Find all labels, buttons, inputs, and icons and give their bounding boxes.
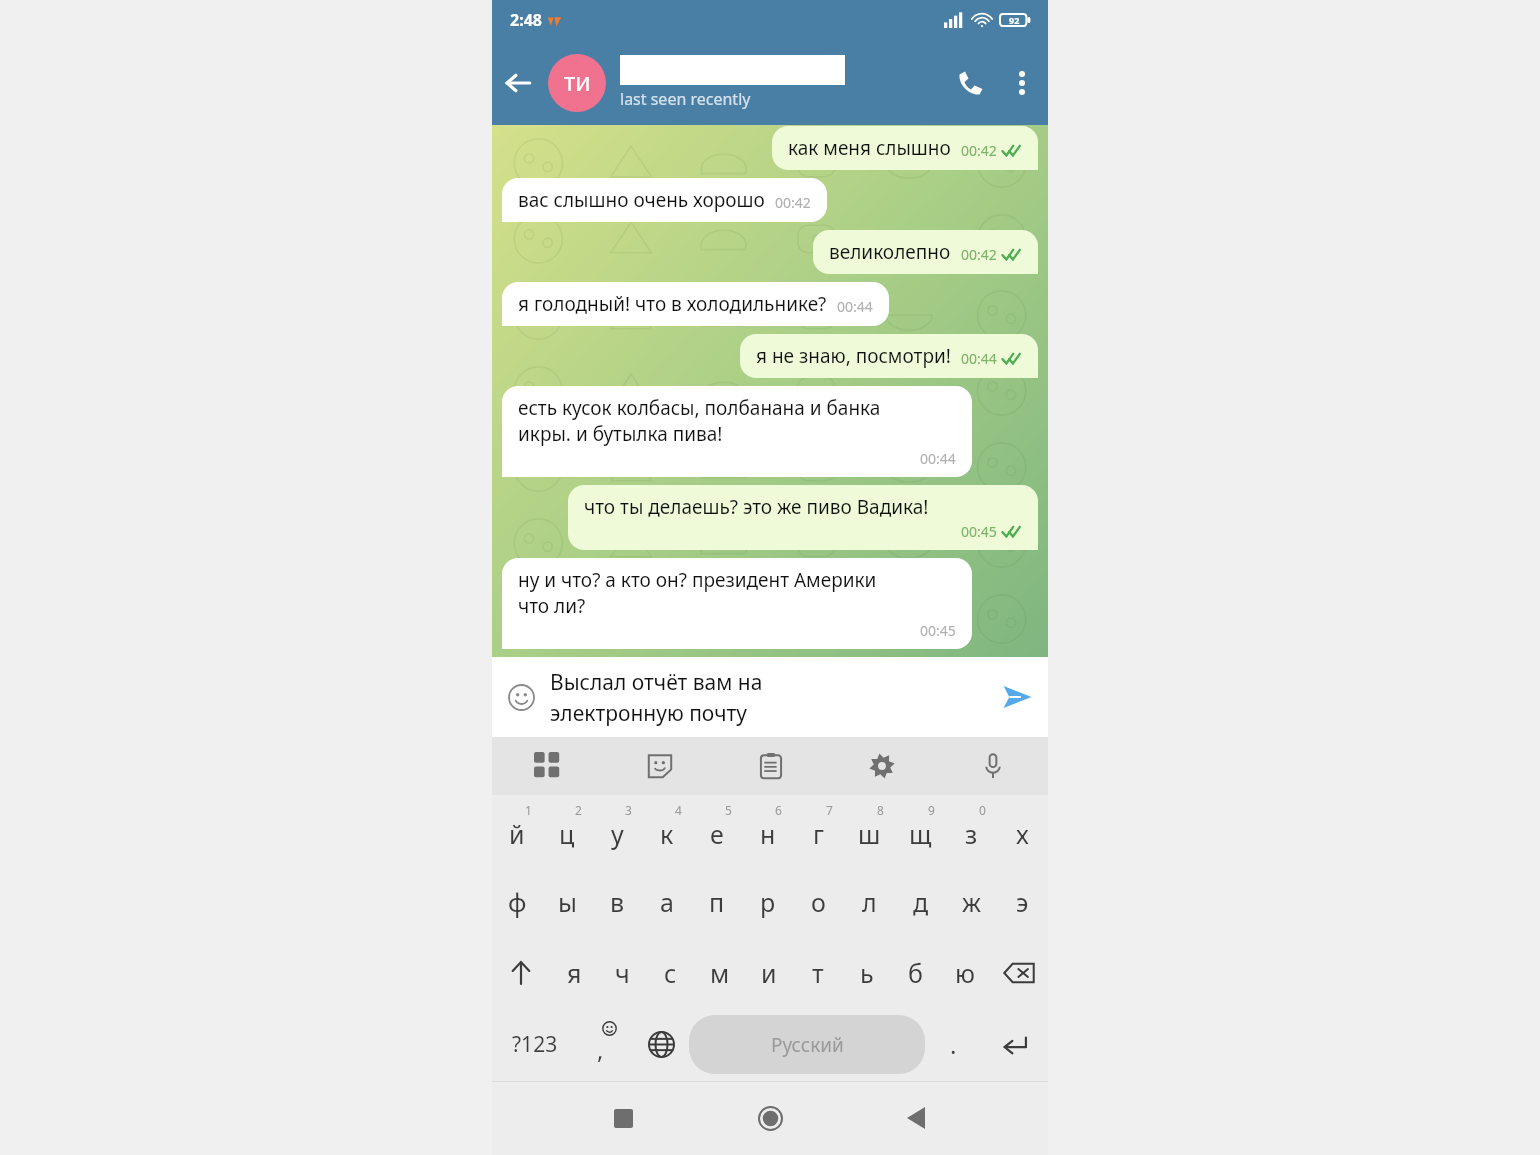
staticText: с [664,956,677,990]
staticText: ТИ [564,70,591,97]
button[interactable]: ж [946,866,997,937]
staticText: 2:48 [510,9,542,31]
staticText: 6 [775,802,782,818]
button[interactable]: ч [598,937,646,1008]
staticText: п [709,885,725,919]
staticText: ь [860,956,874,990]
button[interactable]: 3 [592,795,642,866]
button[interactable]: 5 [692,795,742,866]
button[interactable]: More options [996,57,1048,109]
staticText: т [812,956,824,990]
staticText: б [908,956,923,990]
staticText: великолепно [829,239,951,265]
staticText: 00:45 [961,522,997,541]
staticText: есть кусок колбасы, полбанана и банка ик… [518,395,881,447]
button[interactable]: я не знаю, посмотри! [740,334,1038,378]
staticText: 2 [575,802,582,818]
button[interactable]: я голодный! что в холодильнике? [502,282,889,326]
button[interactable]: р [742,866,793,937]
button[interactable]: как меня слышно [772,126,1038,170]
button[interactable]: вас слышно очень хорошо [502,178,827,222]
staticText: у [611,817,624,851]
staticText: 00:44 [920,449,956,468]
staticText: что ты делаешь? это же пиво Вадика! [584,494,929,520]
button[interactable]: Shift [492,937,550,1008]
button[interactable]: великолепно [813,230,1038,274]
button[interactable]: Enter [981,1008,1048,1081]
button[interactable]: 2 [542,795,592,866]
button[interactable]: п [692,866,742,937]
button[interactable]: а [642,866,692,937]
button[interactable]: Clipboard [715,737,826,795]
button[interactable]: ну и что? а кто он? президент Америки чт… [502,558,972,649]
button[interactable]: Settings [826,737,937,795]
button[interactable]: х [997,795,1048,866]
staticText: вас слышно очень хорошо [518,187,765,213]
button[interactable]: Back [492,57,544,109]
staticText: к [660,817,674,851]
button[interactable]: есть кусок колбасы, полбанана и банка ик… [502,386,972,477]
button[interactable]: Emoji and comma [577,1008,633,1081]
button[interactable]: . [925,1008,981,1081]
button[interactable]: Русский [689,1015,925,1074]
button[interactable]: о [793,866,844,937]
button[interactable]: с [646,937,695,1008]
button[interactable]: 7 [793,795,844,866]
button[interactable]: э [997,866,1048,937]
staticText: х [1016,817,1029,851]
staticText: 8 [877,802,884,818]
button[interactable]: 8 [844,795,895,866]
staticText: а [660,885,674,919]
staticText: в [610,885,625,919]
button[interactable]: ы [542,866,592,937]
button[interactable]: Home [740,1088,800,1148]
button[interactable]: Send [986,666,1048,728]
button[interactable]: Voice input [937,737,1048,795]
button[interactable]: Change language [633,1008,689,1081]
staticText: ну и что? а кто он? президент Америки чт… [518,567,877,619]
staticText: 00:45 [920,621,956,640]
button[interactable]: ?123 [492,1008,577,1081]
button[interactable]: л [844,866,895,937]
staticText: 00:44 [837,297,873,316]
button[interactable]: 9 [895,795,946,866]
button[interactable]: Back [887,1088,947,1148]
button[interactable]: 6 [742,795,793,866]
button[interactable]: ф [492,866,542,937]
staticText: я голодный! что в холодильнике? [518,291,827,317]
button[interactable]: и [744,937,793,1008]
staticText: 00:44 [961,349,997,368]
button[interactable]: 0 [946,795,997,866]
staticText: е [710,817,724,851]
button[interactable]: Call [944,57,996,109]
staticText: ы [558,885,577,919]
button[interactable]: Emoji [492,668,550,726]
staticText: 4 [675,802,682,818]
button[interactable]: т [793,937,842,1008]
staticText: я не знаю, посмотри! [756,343,951,369]
staticText: м [710,956,730,990]
staticText: Русский [771,1032,844,1058]
button[interactable]: ю [940,937,989,1008]
staticText: 7 [826,802,833,818]
button[interactable]: в [592,866,642,937]
button[interactable]: Backspace [989,937,1048,1008]
button[interactable]: ТИ [548,54,606,112]
button[interactable]: что ты делаешь? это же пиво Вадика! [568,485,1038,550]
button[interactable]: б [891,937,940,1008]
button[interactable]: м [695,937,744,1008]
button[interactable]: Apps [492,737,604,795]
staticText: ю [955,956,975,990]
button[interactable]: 1 [492,795,542,866]
button[interactable]: Stickers [604,737,715,795]
staticText: л [862,885,877,919]
button[interactable]: ь [842,937,891,1008]
staticText: Выслал отчёт вам на электронную почту [550,668,763,727]
button[interactable]: я [550,937,598,1008]
staticText: . [950,1028,957,1061]
button[interactable]: Recent apps [593,1088,653,1148]
button[interactable]: д [895,866,946,937]
staticText: 9 [928,802,935,818]
button[interactable]: 4 [642,795,692,866]
staticText: ч [615,956,630,990]
